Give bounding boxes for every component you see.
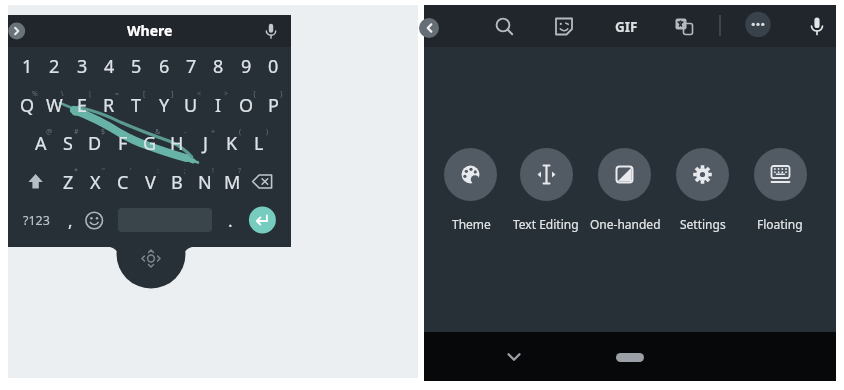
button[interactable]: [116, 240, 186, 286]
staticText: 9: [241, 54, 252, 79]
staticText: P: [268, 93, 279, 118]
staticText: V: [145, 170, 156, 195]
button[interactable]: [109, 125, 136, 162]
button[interactable]: [164, 125, 191, 162]
button[interactable]: [191, 163, 218, 200]
button[interactable]: [5, 16, 29, 46]
button[interactable]: [14, 87, 41, 124]
staticText: D: [88, 131, 102, 156]
button[interactable]: [246, 125, 273, 162]
staticText: J: [203, 131, 208, 156]
button[interactable]: [95, 48, 122, 85]
button[interactable]: [205, 87, 232, 124]
button[interactable]: [109, 163, 136, 200]
button[interactable]: [95, 87, 122, 124]
button[interactable]: [741, 7, 775, 41]
button[interactable]: [18, 163, 54, 200]
button[interactable]: [41, 48, 68, 85]
button[interactable]: [136, 125, 163, 162]
button[interactable]: [232, 48, 259, 85]
button[interactable]: [177, 87, 204, 124]
button[interactable]: [205, 48, 232, 85]
staticText: .: [228, 209, 233, 232]
button[interactable]: [218, 163, 245, 200]
staticText: Theme: [452, 216, 491, 232]
button[interactable]: [55, 125, 82, 162]
button[interactable]: [68, 87, 95, 124]
staticText: W: [46, 93, 63, 118]
button[interactable]: [668, 9, 704, 45]
button[interactable]: [82, 125, 109, 162]
button[interactable]: [606, 9, 646, 45]
button[interactable]: [136, 163, 163, 200]
button[interactable]: [57, 202, 83, 238]
button[interactable]: [602, 344, 658, 372]
staticText: ?: [238, 166, 242, 176]
staticText: Floating: [757, 216, 803, 232]
button[interactable]: [123, 87, 150, 124]
staticText: }: [280, 89, 283, 99]
staticText: ;: [184, 166, 186, 176]
staticText: K: [226, 131, 238, 156]
staticText: ,: [68, 209, 73, 232]
staticText: Y: [159, 93, 170, 118]
staticText: ?123: [23, 212, 50, 229]
button[interactable]: [494, 337, 534, 377]
button[interactable]: [82, 163, 109, 200]
button[interactable]: [8, 15, 291, 47]
staticText: 6: [159, 54, 170, 79]
button[interactable]: [218, 125, 245, 162]
button[interactable]: [676, 148, 729, 201]
staticText: M: [224, 170, 241, 195]
button[interactable]: [123, 48, 150, 85]
button[interactable]: [16, 202, 56, 238]
button[interactable]: [243, 202, 281, 238]
button[interactable]: [256, 16, 286, 46]
button[interactable]: [68, 48, 95, 85]
staticText: \: [61, 89, 64, 99]
staticText: &: [155, 127, 161, 137]
button[interactable]: [27, 125, 54, 162]
staticText: Where: [127, 21, 173, 40]
button[interactable]: [232, 87, 259, 124]
button[interactable]: [243, 163, 283, 200]
staticText: Z: [63, 170, 74, 195]
button[interactable]: [14, 48, 41, 85]
button[interactable]: [444, 148, 497, 201]
staticText: %: [32, 89, 38, 99]
staticText: ]: [171, 89, 174, 99]
staticText: #: [74, 127, 79, 137]
button[interactable]: [800, 8, 834, 44]
button[interactable]: [485, 8, 521, 44]
button[interactable]: [217, 202, 243, 238]
button[interactable]: [598, 148, 651, 201]
button[interactable]: [55, 163, 82, 200]
button[interactable]: [259, 87, 286, 124]
button[interactable]: [164, 163, 191, 200]
staticText: L: [254, 131, 264, 156]
staticText: :: [157, 166, 159, 176]
staticText: H: [170, 131, 184, 156]
button[interactable]: [754, 148, 807, 201]
button[interactable]: [41, 87, 68, 124]
button[interactable]: [150, 48, 177, 85]
button[interactable]: [177, 48, 204, 85]
button[interactable]: [259, 48, 286, 85]
staticText: A: [35, 131, 47, 156]
staticText: E: [77, 93, 88, 118]
staticText: 8: [213, 54, 224, 79]
staticText: 5: [131, 54, 142, 79]
staticText: I: [215, 93, 222, 118]
staticText: G: [143, 131, 157, 156]
button[interactable]: [520, 148, 573, 201]
button[interactable]: [81, 202, 107, 238]
button[interactable]: [415, 11, 449, 45]
staticText: B: [171, 170, 183, 195]
button[interactable]: [191, 125, 218, 162]
button[interactable]: [150, 87, 177, 124]
button[interactable]: [546, 9, 582, 45]
staticText: U: [184, 93, 198, 118]
staticText: ': [130, 166, 132, 176]
staticText: ": [102, 166, 105, 176]
